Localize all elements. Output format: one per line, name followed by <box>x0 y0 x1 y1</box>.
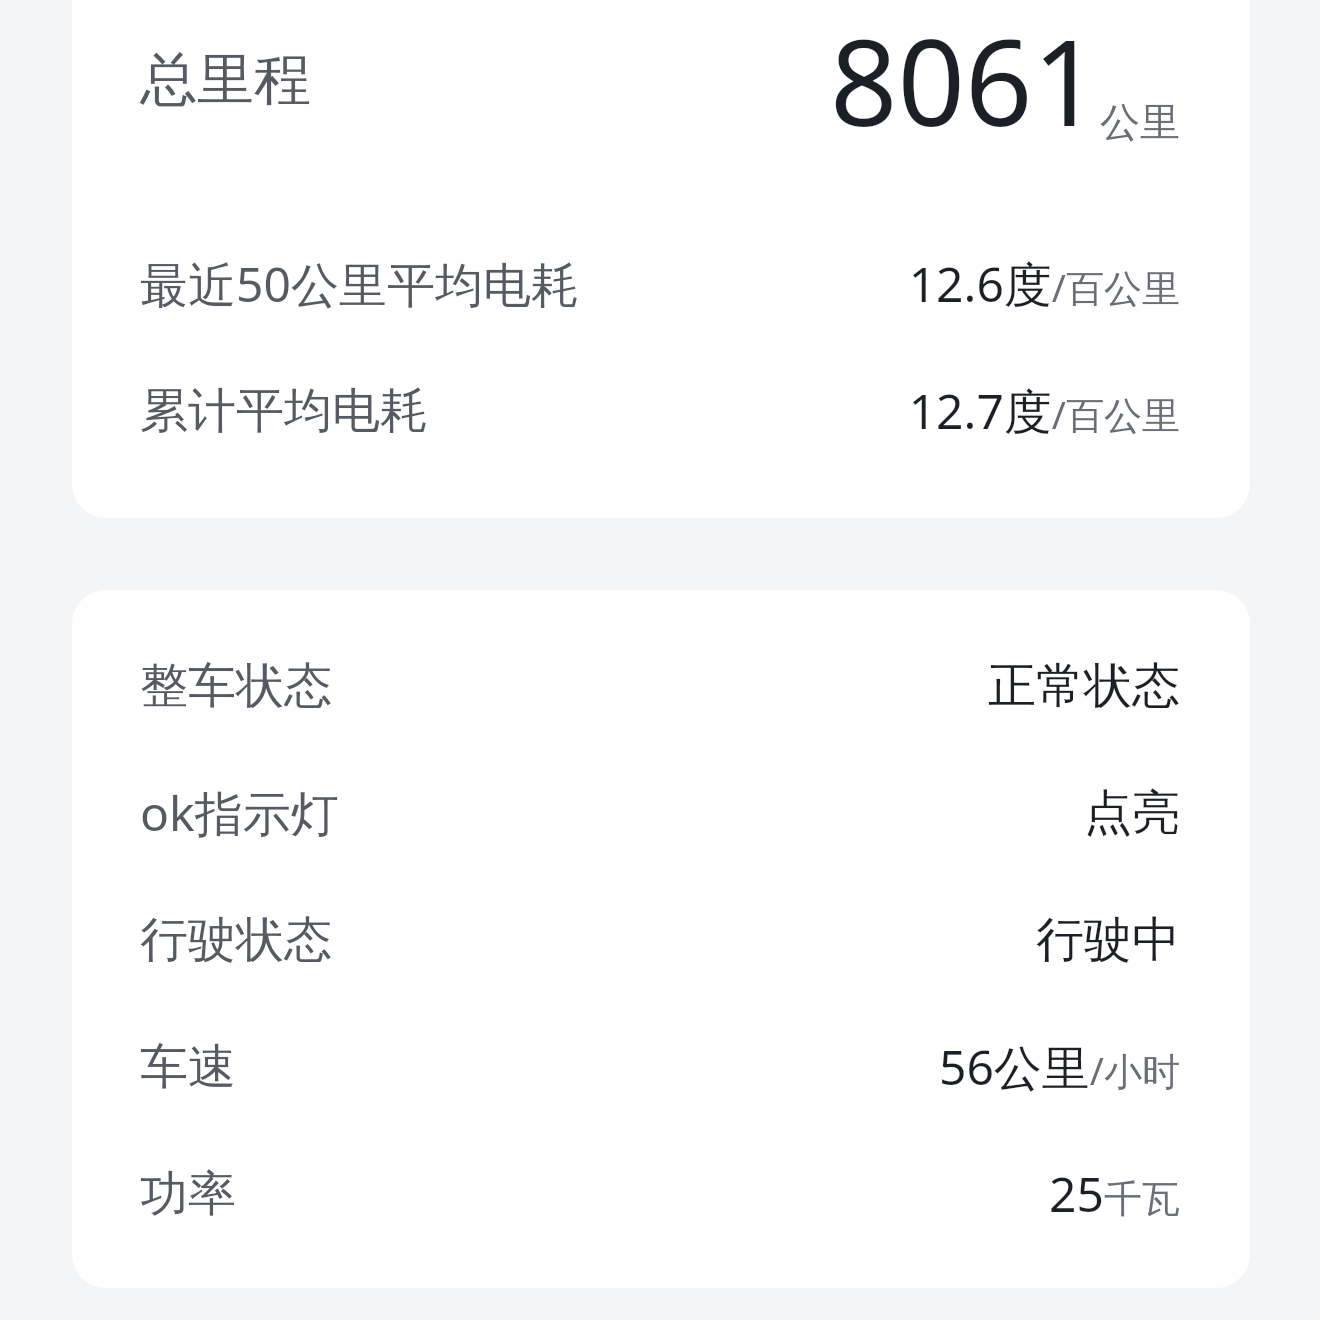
staticText: 最近50公里平均电耗 <box>140 251 579 317</box>
button[interactable]: 累计平均电耗 <box>72 347 1250 474</box>
button[interactable]: 车速 <box>72 1003 1250 1130</box>
staticText: 正常状态 <box>988 656 1180 716</box>
staticText: 累计平均电耗 <box>140 381 428 441</box>
button[interactable]: 最近50公里平均电耗 <box>72 220 1250 347</box>
staticText: 点亮 <box>1084 783 1180 843</box>
staticText: 车速 <box>140 1037 236 1097</box>
button[interactable]: 功率 <box>72 1130 1250 1257</box>
staticText: 8061 <box>830 0 1100 161</box>
staticText: 行驶中 <box>1036 910 1180 970</box>
staticText: 行驶状态 <box>140 910 332 970</box>
button[interactable]: ok指示灯 <box>72 749 1250 876</box>
staticText: 公里 <box>1100 97 1180 147</box>
button[interactable]: 行驶状态 <box>72 876 1250 1003</box>
button[interactable]: 整车状态 <box>72 622 1250 749</box>
staticText: 整车状态 <box>140 656 332 716</box>
staticText: 总里程 <box>140 44 311 116</box>
staticText: 25千瓦 <box>1049 1161 1180 1226</box>
staticText: 12.7度/百公里 <box>908 378 1180 444</box>
staticText: ok指示灯 <box>140 780 339 846</box>
staticText: 12.6度/百公里 <box>908 251 1180 317</box>
button[interactable]: 总里程 <box>72 0 1250 220</box>
staticText: 56公里/小时 <box>938 1034 1180 1100</box>
staticText: 功率 <box>140 1164 236 1224</box>
